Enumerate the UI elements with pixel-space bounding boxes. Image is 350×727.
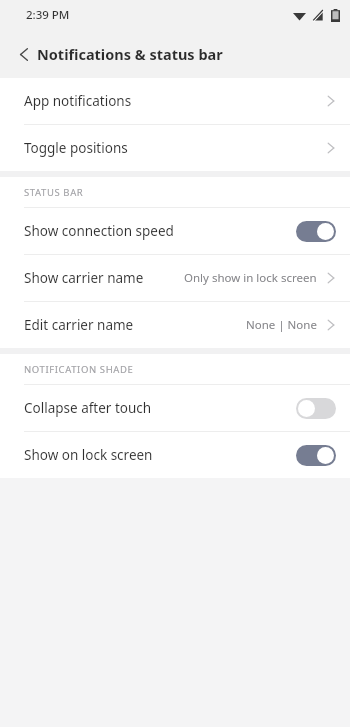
staticText: App notifications — [24, 92, 132, 110]
button[interactable]: Collapse after touch — [0, 385, 350, 431]
button[interactable]: Toggle positions — [0, 125, 350, 171]
button[interactable]: App notifications — [0, 78, 350, 124]
staticText: STATUS BAR — [24, 186, 84, 199]
button[interactable]: Show carrier name — [0, 255, 350, 301]
staticText: Show on lock screen — [24, 446, 153, 464]
button[interactable]: Back — [6, 36, 42, 72]
staticText: Show carrier name — [24, 269, 144, 287]
staticText: Notifications & status bar — [37, 44, 223, 64]
staticText: Toggle positions — [24, 139, 128, 157]
staticText: Only show in lock screen — [184, 270, 317, 286]
button[interactable]: Show on lock screen — [0, 432, 350, 478]
staticText: NOTIFICATION SHADE — [24, 363, 134, 376]
button[interactable]: Show connection speed — [0, 208, 350, 254]
staticText: Show connection speed — [24, 222, 174, 240]
staticText: None | None — [246, 317, 317, 333]
button[interactable]: Edit carrier name — [0, 302, 350, 348]
staticText: Edit carrier name — [24, 316, 134, 334]
staticText: Collapse after touch — [24, 399, 152, 417]
staticText: 2:39 PM — [26, 7, 70, 23]
